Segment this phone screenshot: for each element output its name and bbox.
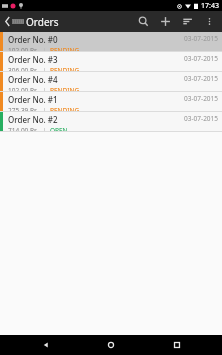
staticText: Order No. #1 [8, 94, 58, 105]
staticText: PENDING [50, 46, 80, 51]
staticText: PENDING [50, 86, 80, 91]
staticText: Order No. #4 [8, 74, 58, 85]
staticText: 03-07-2015 [184, 54, 218, 63]
staticText: Orders [26, 15, 59, 29]
staticText: 03-07-2015 [184, 114, 218, 123]
staticText: | [39, 66, 50, 71]
button[interactable]: Order No. #2 [0, 112, 222, 132]
staticText: Order No. #2 [8, 114, 58, 125]
button[interactable]: Order No. #1 [0, 92, 222, 112]
staticText: | [39, 86, 50, 91]
button[interactable]: Navigate up [3, 15, 26, 28]
button[interactable]: Back [26, 335, 66, 355]
button[interactable]: Recent apps [157, 335, 197, 355]
staticText: 306.00 Rs. [8, 66, 39, 71]
staticText: 17:43 [201, 1, 219, 11]
staticText: 03-07-2015 [184, 94, 218, 103]
button[interactable]: Search [132, 11, 154, 32]
button[interactable]: Order No. #4 [0, 72, 222, 92]
button[interactable]: More options [198, 11, 220, 32]
staticText: PENDING [50, 106, 80, 111]
staticText: 275.39 Rs. [8, 106, 39, 111]
staticText: PENDING [50, 66, 80, 71]
staticText: Order No. #0 [8, 34, 58, 45]
staticText: 03-07-2015 [184, 34, 218, 43]
button[interactable]: Add [154, 11, 176, 32]
staticText: | [39, 106, 50, 111]
button[interactable]: Order No. #3 [0, 52, 222, 72]
staticText: 03-07-2015 [184, 74, 218, 83]
staticText: 102.00 Rs. [8, 86, 39, 91]
staticText: Order No. #3 [8, 54, 58, 65]
staticText: OPEN [50, 126, 68, 131]
staticText: 102.00 Rs. [8, 46, 39, 51]
button[interactable]: Home [91, 335, 131, 355]
button[interactable]: Order No. #0 [0, 32, 222, 52]
staticText: | [39, 126, 50, 131]
button[interactable]: Sort [176, 11, 198, 32]
staticText: 714.00 Rs. [8, 126, 39, 131]
